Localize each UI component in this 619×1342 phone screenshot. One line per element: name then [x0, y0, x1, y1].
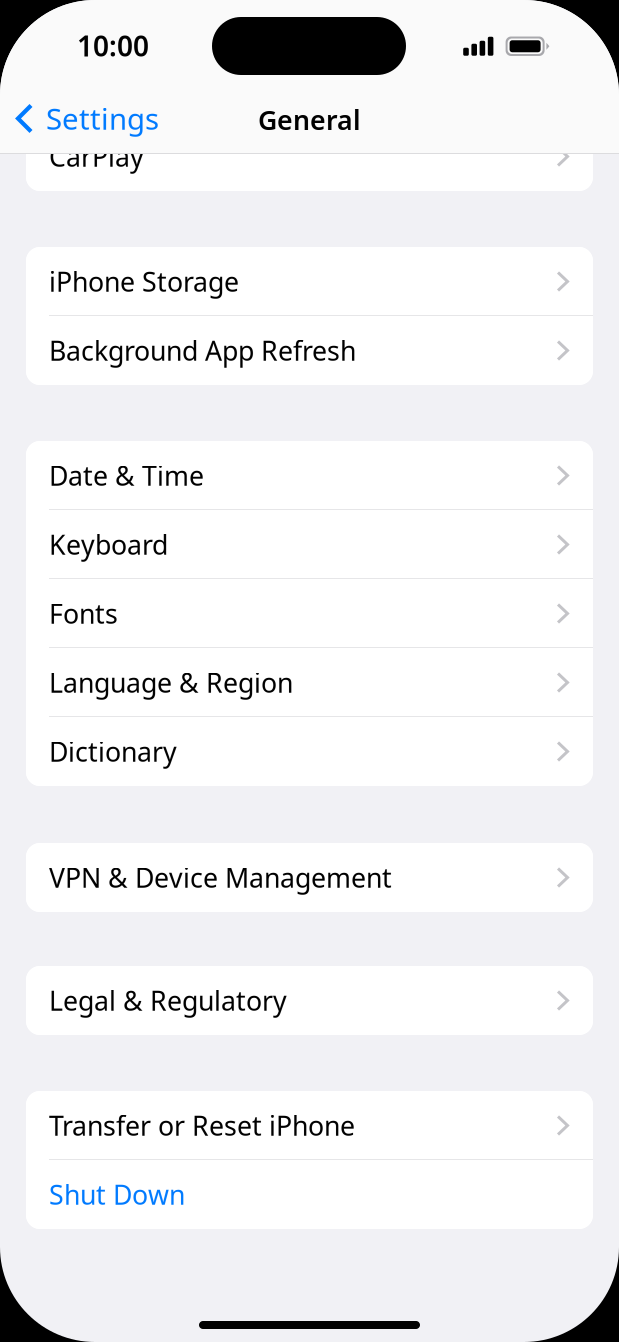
button[interactable]: Language & Region [26, 648, 593, 717]
staticText: 10:00 [77, 27, 149, 64]
button[interactable]: iPhone Storage [26, 247, 593, 316]
staticText: Keyboard [49, 527, 168, 562]
button[interactable]: Shut Down [26, 1160, 593, 1229]
staticText: Dictionary [49, 734, 177, 769]
staticText: Language & Region [49, 665, 293, 700]
staticText: VPN & Device Management [49, 860, 392, 895]
staticText: CarPlay [49, 139, 144, 174]
staticText: Shut Down [49, 1177, 185, 1212]
staticText: Legal & Regulatory [49, 983, 287, 1018]
button[interactable]: Keyboard [26, 510, 593, 579]
button[interactable]: Fonts [26, 579, 593, 648]
staticText: iPhone Storage [49, 264, 239, 299]
staticText: Date & Time [49, 458, 204, 493]
button[interactable]: VPN & Device Management [26, 843, 593, 912]
button[interactable]: Settings [16, 91, 169, 146]
staticText: Settings [46, 99, 159, 138]
button[interactable]: Date & Time [26, 441, 593, 510]
staticText: Transfer or Reset iPhone [49, 1108, 355, 1143]
staticText: Background App Refresh [49, 333, 356, 368]
staticText: Fonts [49, 596, 118, 631]
button[interactable]: Background App Refresh [26, 316, 593, 385]
button[interactable]: CarPlay [26, 122, 593, 191]
button[interactable]: Transfer or Reset iPhone [26, 1091, 593, 1160]
staticText: General [258, 102, 361, 137]
button[interactable]: Legal & Regulatory [26, 966, 593, 1035]
button[interactable]: Dictionary [26, 717, 593, 786]
